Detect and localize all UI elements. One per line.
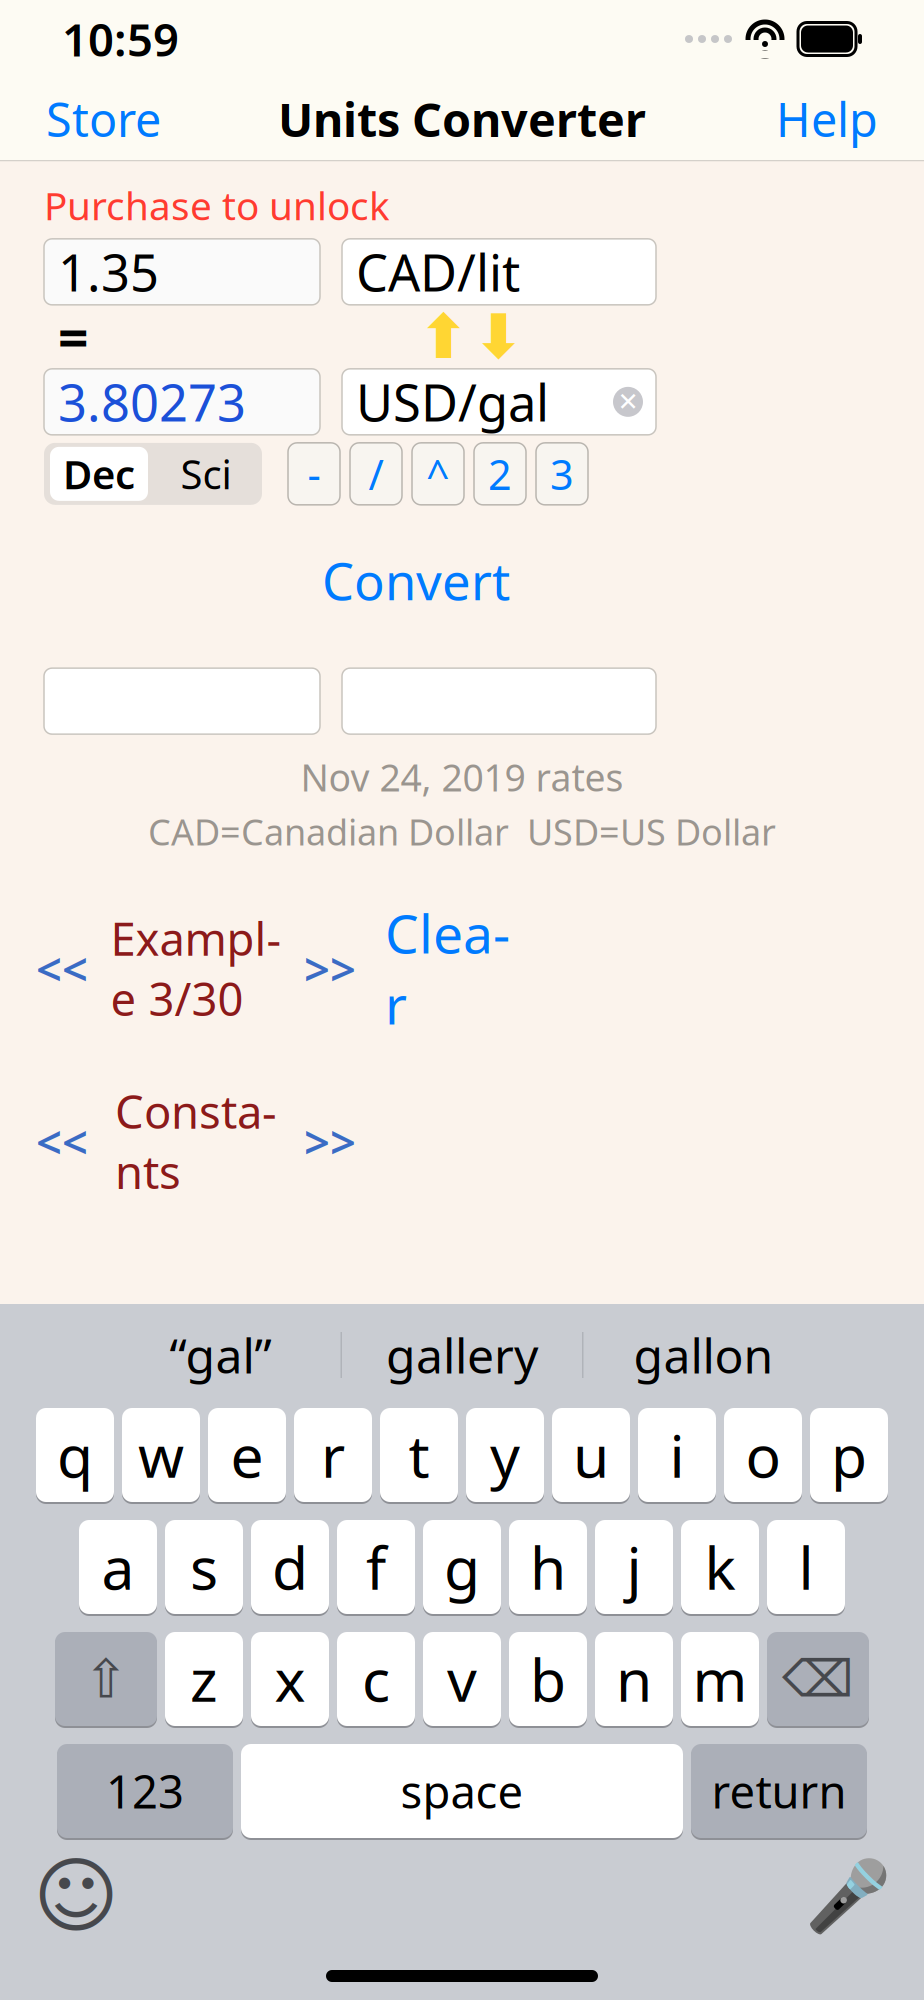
button[interactable]: Next — [294, 1103, 366, 1179]
staticText: b — [530, 1640, 566, 1718]
button[interactable]: y — [466, 1406, 544, 1504]
button[interactable]: Dec — [46, 443, 152, 505]
button[interactable]: e — [208, 1406, 286, 1504]
button[interactable]: h — [509, 1518, 587, 1616]
staticText: ^ — [426, 446, 450, 501]
button[interactable]: gallon — [583, 1324, 823, 1386]
button[interactable]: q — [36, 1406, 114, 1504]
button[interactable]: ^ — [412, 443, 464, 505]
button[interactable]: Clear text — [606, 380, 650, 424]
button[interactable]: 123 — [57, 1742, 233, 1840]
button[interactable]: c — [337, 1630, 415, 1728]
button[interactable]: Sci — [152, 443, 260, 505]
button[interactable]: return — [691, 1742, 867, 1840]
button[interactable]: “gal” — [100, 1324, 340, 1386]
button[interactable]: r — [294, 1406, 372, 1504]
button[interactable]: z — [165, 1630, 243, 1728]
staticText: ✕ — [617, 387, 638, 416]
staticText: k — [704, 1528, 735, 1606]
staticText: j — [626, 1528, 641, 1606]
button[interactable]: - — [288, 443, 340, 505]
staticText: >> — [304, 1111, 356, 1171]
button[interactable]: Previous — [26, 930, 98, 1006]
staticText: g — [444, 1528, 480, 1606]
button[interactable]: p — [810, 1406, 888, 1504]
button[interactable]: i — [638, 1406, 716, 1504]
staticText: 3.80273 — [58, 368, 246, 435]
staticText: / — [368, 446, 383, 501]
staticText: 123 — [106, 1761, 184, 1821]
button[interactable]: b — [509, 1630, 587, 1728]
button[interactable]: v — [423, 1630, 501, 1728]
staticText: l — [798, 1528, 813, 1606]
button[interactable]: 2 — [474, 443, 526, 505]
staticText: u — [573, 1416, 609, 1494]
staticText: CAD=Canadian Dollar USD=US Dollar — [148, 808, 776, 855]
staticText: ⬇ — [473, 302, 524, 372]
staticText: c — [362, 1640, 390, 1718]
button[interactable]: x — [251, 1630, 329, 1728]
button[interactable]: Shift — [55, 1630, 157, 1728]
button[interactable]: n — [595, 1630, 673, 1728]
button[interactable]: w — [122, 1406, 200, 1504]
staticText: n — [616, 1640, 652, 1718]
button[interactable]: Store — [40, 78, 167, 160]
button[interactable]: gallery — [342, 1324, 582, 1386]
staticText: Convert — [322, 547, 510, 614]
button[interactable]: d — [251, 1518, 329, 1616]
staticText: Dec — [63, 447, 135, 500]
staticText: Units Converter — [278, 88, 646, 150]
staticText: 2 — [488, 446, 512, 501]
staticText: << — [36, 938, 88, 998]
staticText: ⬆ — [418, 302, 469, 372]
staticText: ⇧ — [83, 1649, 128, 1709]
staticText: r — [321, 1416, 345, 1494]
button[interactable]: / — [350, 443, 402, 505]
button[interactable]: j — [595, 1518, 673, 1616]
staticText: - — [307, 446, 320, 501]
staticText: h — [530, 1528, 566, 1606]
staticText: USD/gal — [356, 368, 549, 435]
staticText: i — [669, 1416, 684, 1494]
button[interactable]: f — [337, 1518, 415, 1616]
staticText: Sci — [180, 447, 231, 500]
button[interactable]: m — [681, 1630, 759, 1728]
staticText: = — [58, 301, 89, 372]
staticText: y — [490, 1416, 520, 1494]
staticText: p — [831, 1416, 867, 1494]
staticText: Clear — [385, 897, 510, 1039]
button[interactable]: o — [724, 1406, 802, 1504]
staticText: f — [366, 1528, 386, 1606]
button[interactable]: k — [681, 1518, 759, 1616]
staticText: a — [101, 1528, 134, 1606]
button[interactable]: Help — [770, 78, 884, 160]
staticText: o — [745, 1416, 780, 1494]
button[interactable]: t — [380, 1406, 458, 1504]
staticText: w — [138, 1416, 184, 1494]
staticText: Example 3/30 — [110, 908, 281, 1028]
staticText: Purchase to unlock — [44, 179, 390, 231]
button[interactable]: u — [552, 1406, 630, 1504]
staticText: d — [272, 1528, 308, 1606]
button[interactable]: space — [241, 1742, 683, 1840]
button[interactable]: s — [165, 1518, 243, 1616]
button[interactable]: Delete — [767, 1630, 869, 1728]
button[interactable]: Dictation — [804, 1852, 892, 1940]
button[interactable]: a — [79, 1518, 157, 1616]
button[interactable]: Clear — [375, 889, 520, 1047]
button[interactable]: Emoji keyboard — [32, 1852, 120, 1940]
staticText: Help — [776, 88, 878, 150]
staticText: CAD/lit — [356, 238, 520, 305]
staticText: 3 — [550, 446, 574, 501]
button[interactable]: g — [423, 1518, 501, 1616]
button[interactable]: Previous — [26, 1103, 98, 1179]
button[interactable]: Swap units — [416, 308, 526, 366]
staticText: ⌫ — [782, 1650, 854, 1708]
staticText: Store — [46, 88, 161, 150]
button[interactable]: l — [767, 1518, 845, 1616]
button[interactable]: 3 — [536, 443, 588, 505]
button[interactable]: Convert — [312, 539, 520, 622]
staticText: space — [400, 1761, 523, 1821]
button[interactable]: Next — [294, 930, 366, 1006]
staticText: return — [711, 1761, 846, 1821]
